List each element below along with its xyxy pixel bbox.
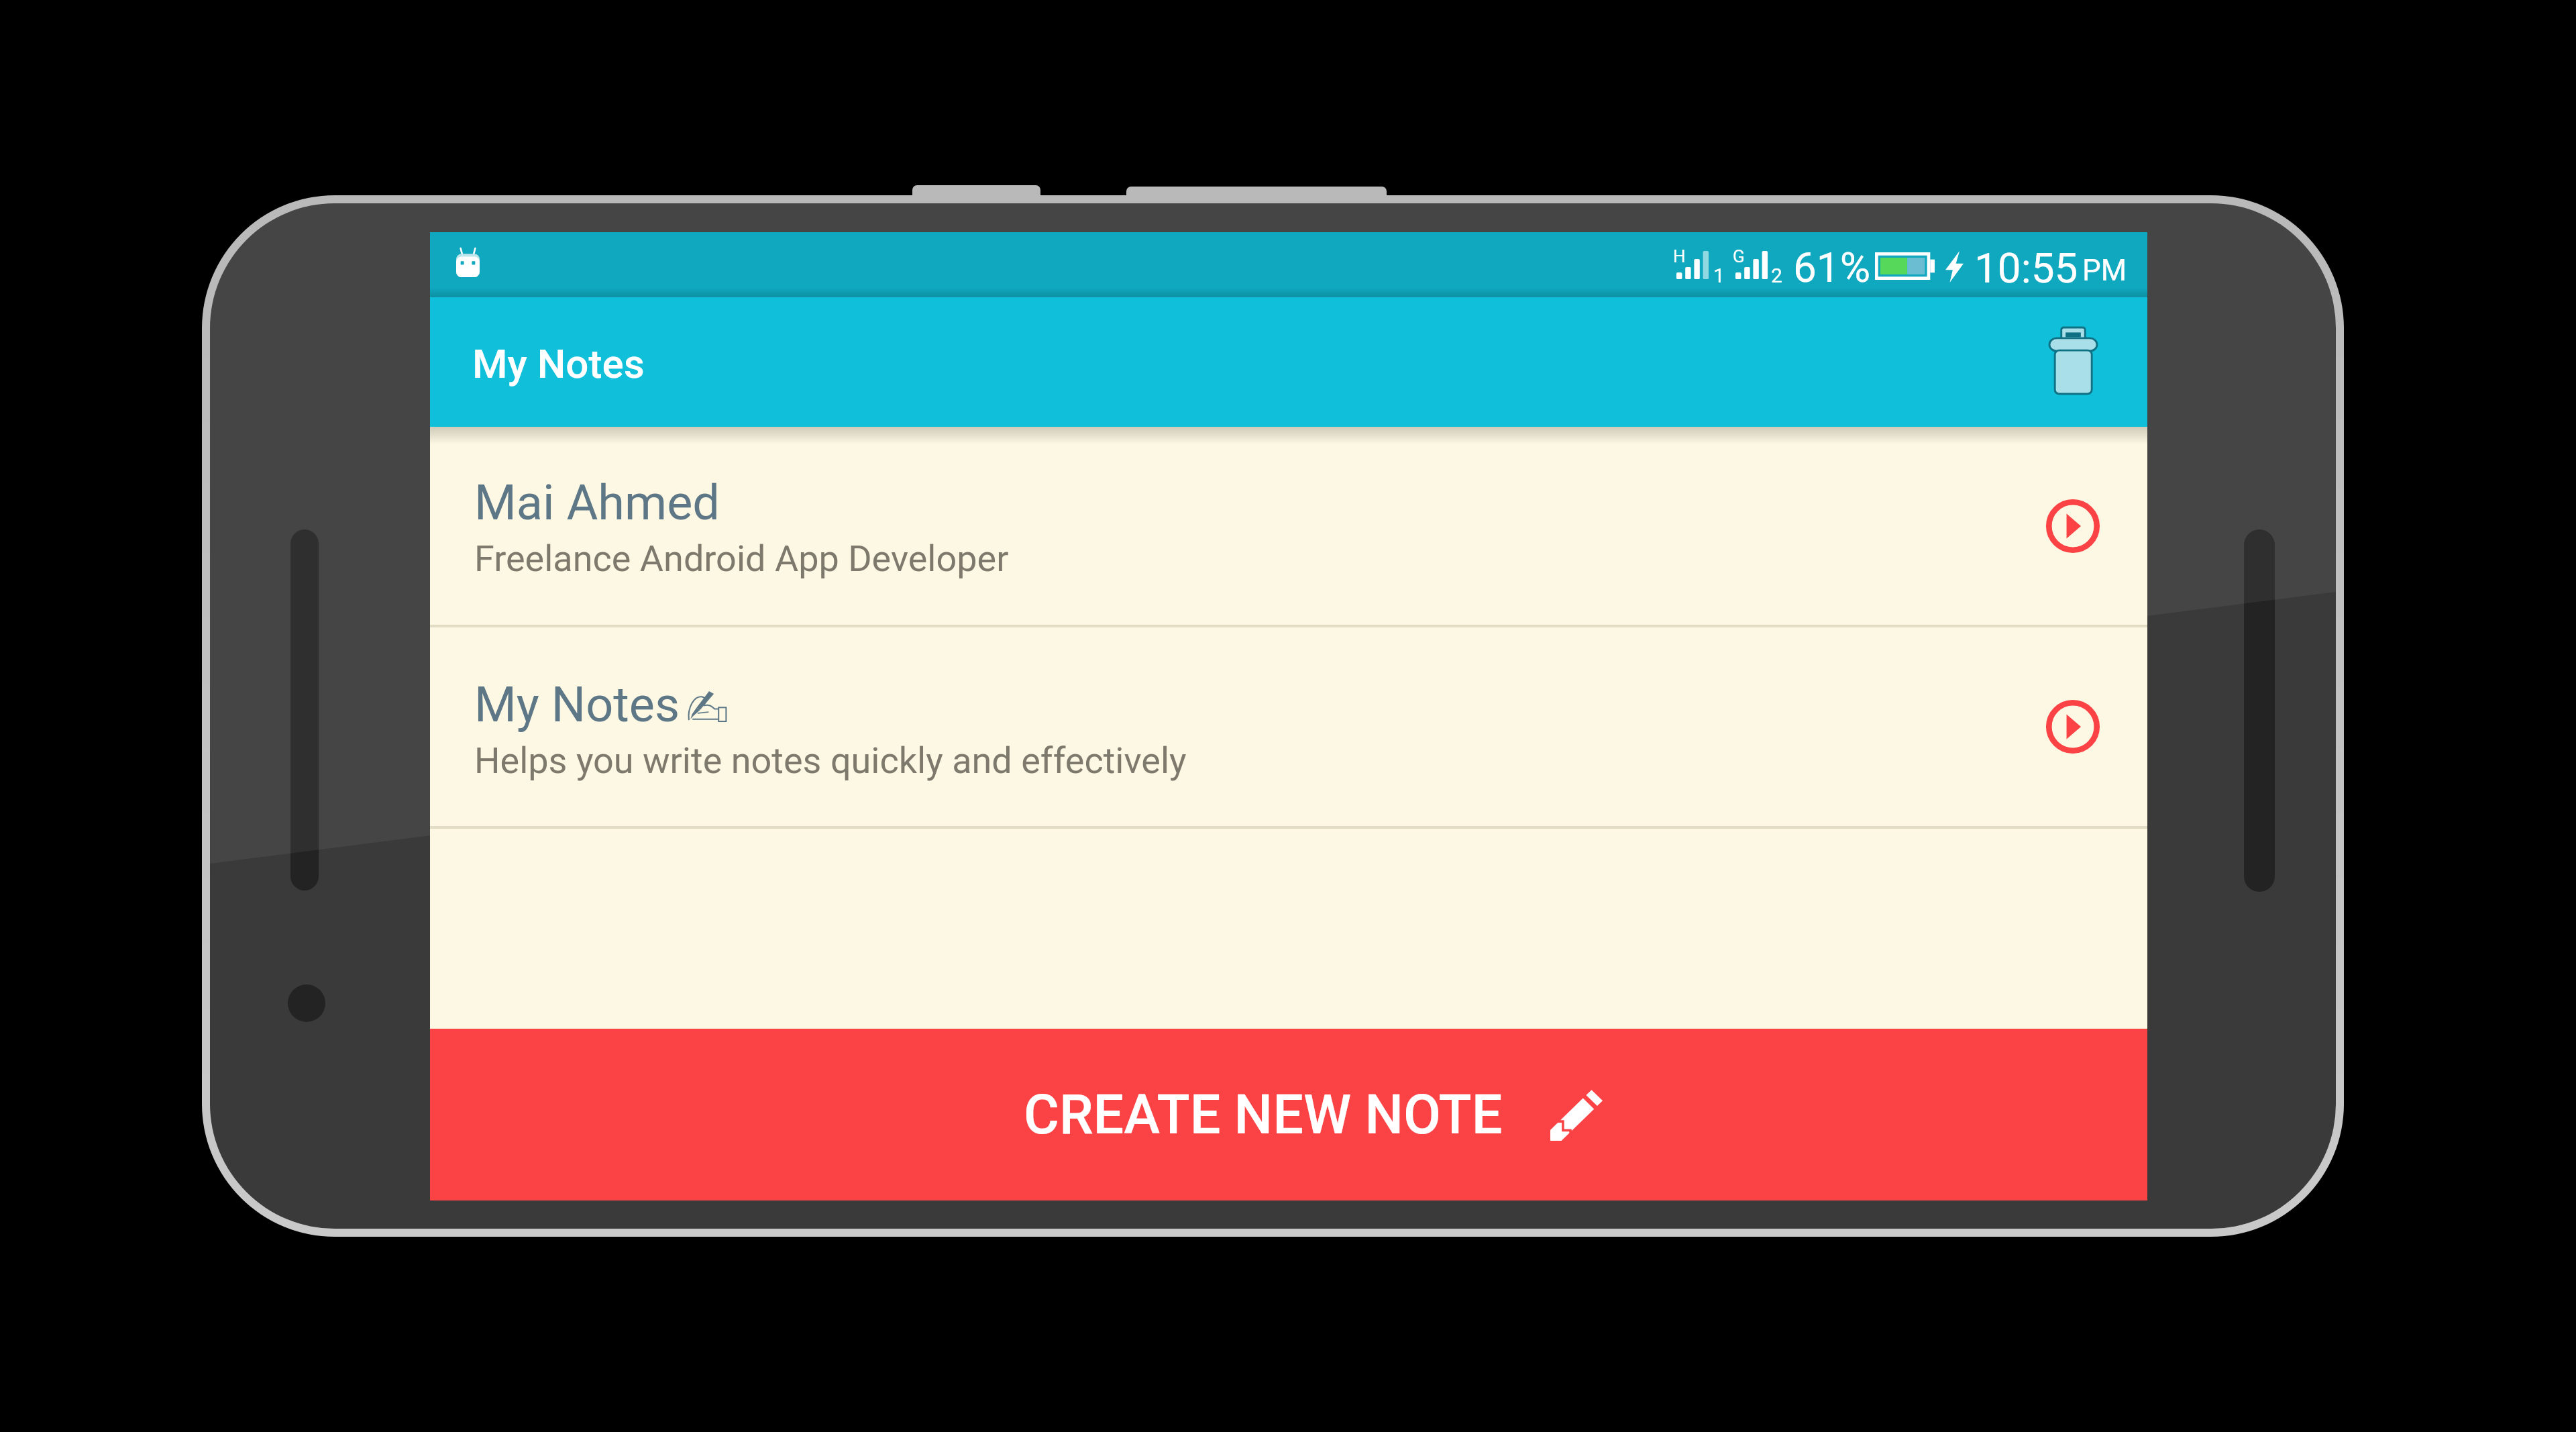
button[interactable]: My Notes <box>430 627 2147 826</box>
staticText: My Notes <box>472 340 645 387</box>
staticText: G <box>1733 246 1745 266</box>
staticText: H <box>1673 246 1686 266</box>
staticText: My Notes <box>474 676 680 733</box>
staticText: 1 <box>1713 264 1725 287</box>
staticText: 10:55 <box>1974 244 2078 293</box>
staticText: 2 <box>1771 264 1782 287</box>
button[interactable]: Open My Notes <box>2031 684 2115 769</box>
staticText: PM <box>2082 253 2127 288</box>
button[interactable]: Open Mai Ahmed <box>2031 484 2115 568</box>
button[interactable]: CREATE NEW NOTE <box>430 1029 2147 1200</box>
button[interactable]: Mai Ahmed <box>430 427 2147 625</box>
staticText: Freelance Android App Developer <box>474 538 1009 580</box>
staticText: Mai Ahmed <box>474 474 720 531</box>
staticText: Helps you write notes quickly and effect… <box>474 739 1187 782</box>
staticText: CREATE NEW NOTE <box>1024 1083 1503 1147</box>
button[interactable]: Delete all notes <box>2033 311 2113 410</box>
staticText: 61% <box>1793 243 1871 292</box>
